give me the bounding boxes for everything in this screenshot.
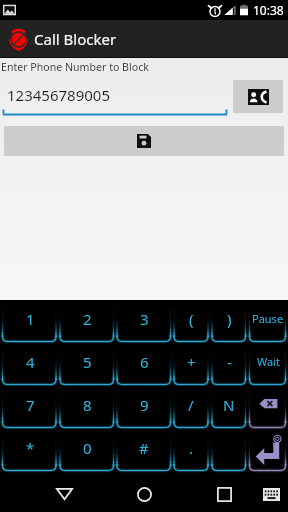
staticText: ( — [189, 309, 194, 329]
button[interactable]: Keyboard — [254, 476, 288, 512]
staticText: 6 — [140, 352, 149, 372]
staticText: 1 — [26, 309, 35, 329]
staticText: 2 — [83, 309, 92, 329]
staticText: + — [187, 352, 196, 372]
button[interactable]: Save — [4, 126, 284, 156]
button[interactable]: - — [212, 341, 246, 382]
staticText: * — [26, 438, 35, 458]
button[interactable] — [212, 427, 246, 468]
button[interactable]: 6 — [117, 341, 171, 382]
staticText: Enter Phone Number to Block — [1, 60, 149, 74]
staticText: . — [189, 438, 194, 458]
button[interactable]: + — [174, 341, 208, 382]
staticText: # — [139, 438, 149, 458]
button[interactable]: Home — [120, 476, 168, 512]
staticText: 7 — [26, 395, 35, 415]
button[interactable]: Pick contact — [233, 80, 283, 113]
button[interactable]: N — [212, 384, 246, 425]
button[interactable]: . — [174, 427, 208, 468]
staticText: / — [188, 395, 194, 415]
button[interactable]: * — [3, 427, 57, 468]
staticText: 3 — [140, 309, 149, 329]
staticText: 9 — [140, 395, 149, 415]
button[interactable]: Pause — [250, 298, 286, 339]
button[interactable]: 0 — [60, 427, 114, 468]
button[interactable]: / — [174, 384, 208, 425]
staticText: Pause — [252, 311, 284, 326]
button[interactable]: Back — [40, 476, 88, 512]
button[interactable]: 5 — [60, 341, 114, 382]
staticText: 10:38 — [253, 2, 284, 18]
button[interactable]: Wait — [250, 341, 286, 382]
staticText: 8 — [83, 395, 92, 415]
staticText: Call Blocker — [34, 29, 117, 49]
staticText: - — [227, 352, 232, 372]
button[interactable]: Recents — [200, 476, 248, 512]
staticText: 5 — [83, 352, 92, 372]
staticText: 123456789005 — [7, 85, 110, 105]
staticText: 0 — [83, 438, 92, 458]
button[interactable]: # — [117, 427, 171, 468]
button[interactable]: 2 — [60, 298, 114, 339]
button[interactable]: 1 — [3, 298, 57, 339]
button[interactable]: Enter — [250, 427, 286, 468]
button[interactable]: 7 — [3, 384, 57, 425]
staticText: Wait — [257, 354, 280, 369]
button[interactable]: 9 — [117, 384, 171, 425]
button[interactable]: 4 — [3, 341, 57, 382]
staticText: N — [223, 395, 235, 415]
button[interactable]: ) — [212, 298, 246, 339]
button[interactable]: 8 — [60, 384, 114, 425]
button[interactable]: Backspace — [250, 384, 286, 425]
button[interactable]: ( — [174, 298, 208, 339]
staticText: ) — [227, 309, 232, 329]
staticText: 4 — [26, 352, 35, 372]
button[interactable]: 3 — [117, 298, 171, 339]
